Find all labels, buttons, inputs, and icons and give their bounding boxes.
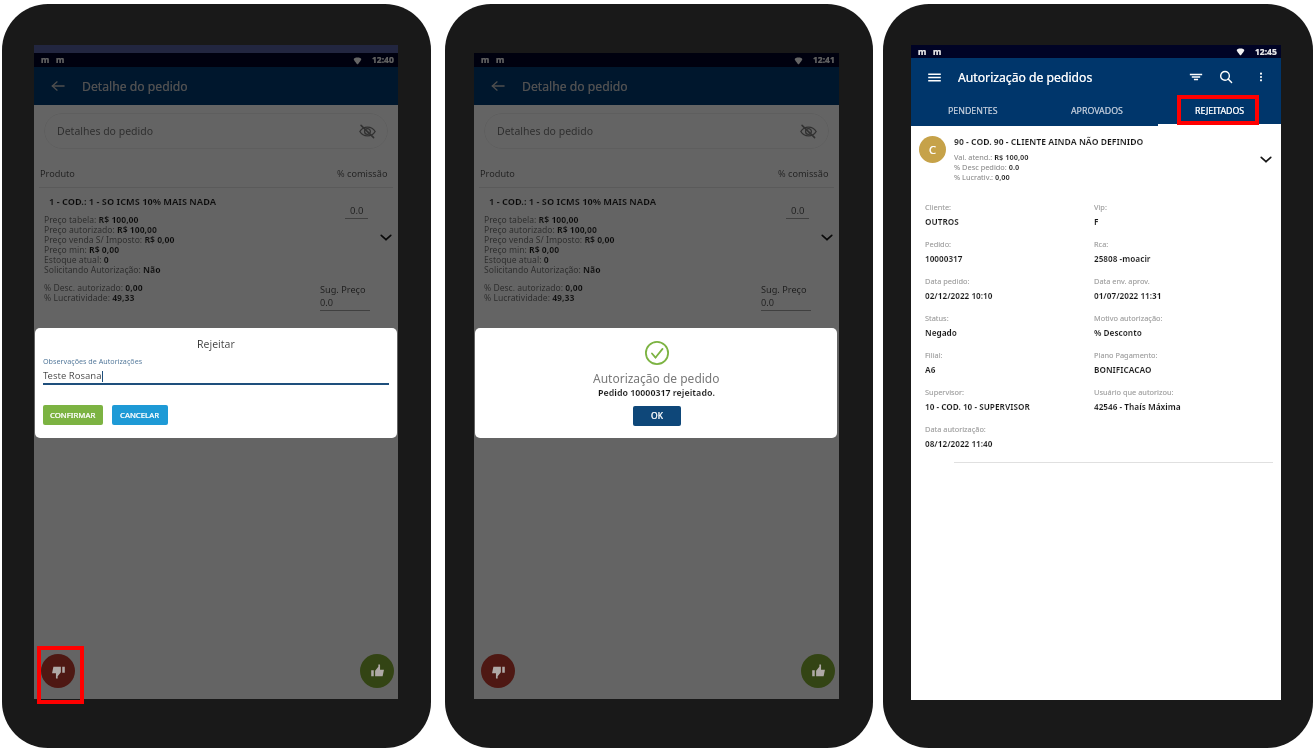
staticText: Sug. Preço [320, 283, 366, 296]
staticText: % Lucrativ.: 0,00 [954, 172, 1010, 182]
staticText: Preço tabela: R$ 100,00 [484, 214, 579, 226]
staticText: Detalhe do pedido [82, 78, 188, 95]
staticText: Observações de Autorizações [43, 356, 143, 366]
staticText: 90 - COD. 90 - CLIENTE AINDA NÃO DEFINID… [954, 136, 1144, 148]
staticText: Teste Rosana [43, 369, 102, 382]
staticText: Preço min: R$ 0,00 [44, 244, 120, 256]
staticText: m [56, 54, 65, 66]
button[interactable]: CANCELAR [112, 405, 168, 425]
staticText: 1 - COD.: 1 - SO ICMS 10% MAIS NADA [489, 195, 657, 208]
staticText: 1 - COD.: 1 - SO ICMS 10% MAIS NADA [49, 195, 217, 208]
staticText: Usuário que autorizou: [1094, 387, 1174, 397]
staticText: Data pedido: [925, 276, 970, 286]
button[interactable]: CONFIRMAR [43, 405, 103, 425]
staticText: Pedido 10000317 rejeitado. [598, 387, 715, 399]
staticText: Autorização de pedido [593, 370, 720, 386]
staticText: % Lucratividade: 49,33 [484, 292, 575, 304]
staticText: Preço venda S/ Imposto: R$ 0,00 [44, 234, 175, 246]
staticText: Preço autorizado: R$ 100,00 [484, 224, 597, 236]
staticText: % comissão [337, 167, 388, 180]
staticText: 0.0 [761, 296, 774, 309]
staticText: Produto [40, 167, 75, 180]
staticText: 10000317 [925, 253, 963, 264]
staticText: CANCELAR [120, 410, 160, 421]
staticText: % Lucratividade: 49,33 [44, 292, 135, 304]
staticText: 12:41 [813, 54, 835, 66]
staticText: 0.0 [791, 204, 805, 217]
staticText: Data env. aprov. [1094, 276, 1150, 286]
staticText: m [933, 46, 942, 58]
staticText: Solicitando Autorização: Não [44, 264, 161, 276]
staticText: C [929, 142, 936, 157]
button[interactable]: Rejeitar pedido [41, 654, 75, 688]
staticText: 12:40 [372, 54, 394, 66]
button[interactable]: Buscar [1211, 58, 1240, 96]
staticText: Plano Pagamento: [1094, 350, 1158, 360]
button[interactable]: Voltar [474, 67, 522, 105]
staticText: 42546 - Thaís Máxima [1094, 401, 1181, 412]
staticText: Solicitando Autorização: Não [484, 264, 601, 276]
staticText: 02/12/2022 10:10 [925, 290, 993, 301]
staticText: % Desc. autorizado: 0,00 [44, 282, 143, 294]
staticText: % Desc. autorizado: 0,00 [484, 282, 583, 294]
staticText: 0.0 [320, 296, 333, 309]
button[interactable]: Aprovar pedido [801, 654, 835, 688]
staticText: Preço venda S/ Imposto: R$ 0,00 [484, 234, 615, 246]
staticText: % Desconto [1094, 327, 1142, 338]
staticText: Val. atend.: R$ 100,00 [954, 152, 1029, 162]
staticText: Filial: [925, 350, 943, 360]
staticText: Produto [480, 167, 515, 180]
button[interactable]: Rejeitar pedido [481, 654, 515, 688]
staticText: Vip: [1094, 202, 1107, 212]
staticText: 25808 -moacir [1094, 253, 1151, 264]
staticText: 12:45 [1255, 46, 1277, 58]
staticText: REJEITADOS [1195, 105, 1245, 117]
staticText: m [918, 46, 927, 58]
button[interactable]: Voltar [34, 67, 82, 105]
staticText: OUTROS [925, 216, 959, 227]
staticText: BONIFICACAO [1094, 364, 1152, 375]
button[interactable]: Filtrar [1180, 58, 1211, 96]
staticText: Preço autorizado: R$ 100,00 [44, 224, 157, 236]
staticText: APROVADOS [1071, 105, 1123, 117]
staticText: Autorização de pedidos [958, 69, 1093, 86]
staticText: m [481, 54, 490, 66]
button[interactable]: OK [633, 406, 681, 426]
staticText: Detalhes do pedido [57, 124, 154, 138]
staticText: PENDENTES [948, 105, 998, 117]
button[interactable]: Aprovar pedido [360, 654, 394, 688]
staticText: A6 [925, 364, 936, 375]
staticText: 10 - COD. 10 - SUPERVISOR [925, 401, 1030, 412]
button[interactable]: APROVADOS [1035, 96, 1158, 126]
staticText: 08/12/2022 11:40 [925, 438, 993, 449]
staticText: Preço min: R$ 0,00 [484, 244, 560, 256]
staticText: Status: [925, 313, 949, 323]
button[interactable]: Detalhes do pedido [44, 113, 388, 149]
button[interactable]: Detalhes do pedido [484, 113, 829, 149]
staticText: Supervisor: [925, 387, 965, 397]
staticText: OK [651, 410, 663, 422]
staticText: % comissão [778, 167, 829, 180]
button[interactable]: Mais opções [1240, 58, 1281, 96]
staticText: Preço tabela: R$ 100,00 [44, 214, 139, 226]
staticText: Pedido: [925, 239, 952, 249]
staticText: F [1094, 216, 1099, 227]
staticText: Detalhe do pedido [522, 78, 628, 95]
staticText: 0.0 [350, 204, 364, 217]
staticText: Detalhes do pedido [497, 124, 594, 138]
staticText: Negado [925, 327, 957, 338]
staticText: 01/07/2022 11:31 [1094, 290, 1162, 301]
staticText: % Desc pedido: 0.0 [954, 162, 1020, 172]
staticText: Rejeitar [197, 337, 235, 351]
staticText: m [496, 54, 505, 66]
staticText: m [41, 54, 50, 66]
staticText: Rca: [1094, 239, 1109, 249]
staticText: Motivo autorização: [1094, 313, 1163, 323]
staticText: Estoque atual: 0 [484, 254, 549, 266]
button[interactable]: PENDENTES [911, 96, 1035, 126]
staticText: Estoque atual: 0 [44, 254, 109, 266]
staticText: Cliente: [925, 202, 952, 212]
button[interactable]: REJEITADOS [1158, 96, 1281, 126]
staticText: CONFIRMAR [50, 410, 96, 421]
button[interactable]: Menu [911, 58, 958, 96]
